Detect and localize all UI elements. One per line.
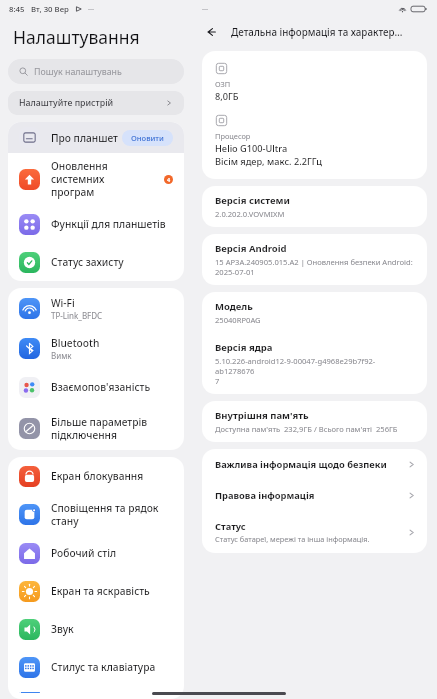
staticText: Вісім ядер, макс. 2.2ГГц [215,155,322,168]
button[interactable]: Оновити [122,130,173,146]
staticText: 2.0.202.0.VOVMIXM [215,209,285,219]
button[interactable]: Функції для планшетів [8,205,184,243]
staticText: Функції для планшетів [51,217,166,231]
button[interactable]: ОЗП [202,51,427,107]
staticText: Процесор [215,131,251,141]
staticText: Про планшет [51,131,122,145]
staticText: Helio G100-Ultra [215,142,288,155]
button[interactable]: Статус [202,511,427,553]
button[interactable]: Екран блокування [8,457,184,495]
staticText: ··· [88,4,95,14]
staticText: Сповіщення та рядок стану [51,501,173,528]
button[interactable]: Процесор [202,107,427,179]
staticText: Модель [215,300,253,313]
button[interactable]: Правова інформація [202,480,427,511]
staticText: Детальна інформація та характер… [231,26,403,39]
staticText: Bluetooth [51,336,100,350]
button[interactable]: Про планшет [8,122,184,153]
staticText: Пошук налаштувань [34,66,122,78]
staticText: Доступна пам'ять 232,9ГБ / Всього пам'ят… [215,424,398,434]
button[interactable]: Налаштуйте пристрій [8,91,184,115]
staticText: 8,0ГБ [215,90,239,103]
button[interactable]: Стилус та клавіатура [8,648,184,686]
staticText: Вимк [51,350,72,361]
staticText: 5.10.226-android12-9-00047-g4968e29b7f92… [215,356,414,386]
button[interactable]: Сповіщення та рядок стану [8,495,184,534]
staticText: Правова інформація [215,489,315,502]
button[interactable]: Bluetooth [8,328,184,368]
button[interactable]: Внутрішня пам'ять [202,401,427,442]
staticText: Оновлення системних програм [51,159,158,199]
staticText: ОЗП [215,79,231,89]
button[interactable]: Екран та яскравість [8,572,184,610]
button[interactable]: Wi-Fi [8,288,184,328]
staticText: 8:45 [9,4,25,15]
staticText: Вт, 30 Вер [31,4,69,15]
button[interactable]: Статус захисту [8,243,184,281]
staticText: 15 AP3A.240905.015.A2 | Оновлення безпек… [215,257,413,277]
staticText: Екран та яскравість [51,584,150,598]
button[interactable]: Оновлення системних програм [8,153,184,205]
staticText: Версія ядра [215,341,273,354]
button[interactable]: Модель [202,292,427,333]
staticText: Статус батареї, мережі та інша інформаці… [215,534,370,544]
button[interactable]: Версія системи [202,186,427,227]
staticText: Налаштування [13,25,140,49]
button[interactable]: Версія Android [202,234,427,285]
button[interactable]: Персоналізація [8,686,184,699]
staticText: 4 [167,176,171,183]
staticText: 25040RP0AG [215,315,261,325]
staticText: Статус захисту [51,255,124,269]
staticText: Звук [51,622,74,636]
button[interactable]: Більше параметрів підключення [8,406,184,450]
staticText: Статус [215,520,246,533]
staticText: Екран блокування [51,469,144,483]
staticText: Версія Android [215,242,287,255]
staticText: Більше параметрів підключення [51,415,148,442]
staticText: Налаштуйте пристрій [19,97,165,109]
staticText: Взаємопов'язаність [51,380,151,394]
button[interactable]: Пошук налаштувань [8,59,184,84]
staticText: Робочий стіл [51,546,117,560]
button[interactable]: Back [202,23,220,41]
staticText: Важлива інформація щодо безпеки [215,458,387,471]
staticText: Стилус та клавіатура [51,660,156,674]
button[interactable]: Версія ядра [202,333,427,394]
staticText: Оновити [131,133,164,143]
staticText: ··· [202,4,209,14]
staticText: Wi-Fi [51,296,75,310]
button[interactable]: Взаємопов'язаність [8,368,184,406]
staticText: Внутрішня пам'ять [215,409,309,422]
button[interactable]: Важлива інформація щодо безпеки [202,449,427,480]
button[interactable]: Робочий стіл [8,534,184,572]
button[interactable]: Звук [8,610,184,648]
staticText: Версія системи [215,194,290,207]
staticText: TP-Link_BFDC [51,310,103,321]
